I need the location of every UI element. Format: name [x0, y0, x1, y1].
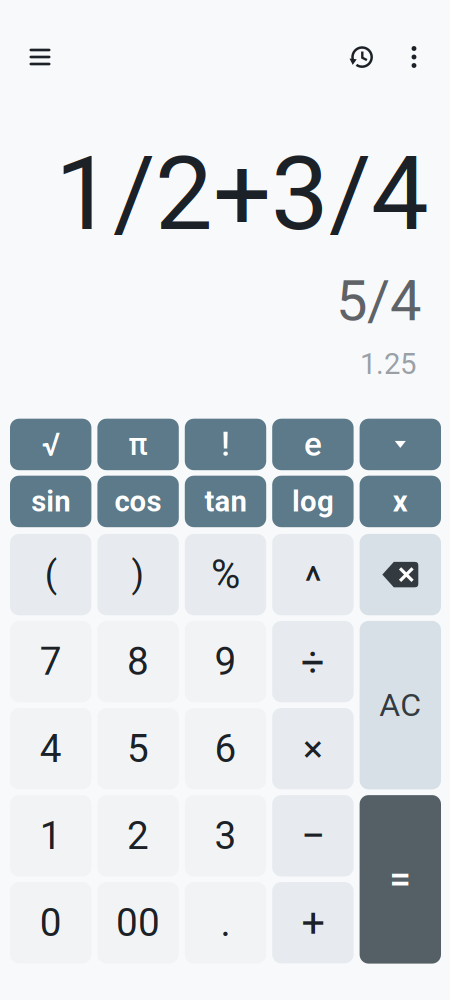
staticText: √ [42, 426, 60, 463]
staticText: ) [132, 553, 145, 596]
staticText: 6 [214, 726, 236, 771]
button[interactable]: 9 [185, 621, 266, 702]
button[interactable]: 7 [10, 621, 91, 702]
button[interactable]: Menu [16, 33, 64, 81]
staticText: 7 [40, 639, 62, 684]
button[interactable]: AC [360, 621, 441, 789]
staticText: sin [31, 484, 70, 519]
button[interactable]: π [97, 419, 179, 470]
button[interactable]: 1 [10, 795, 91, 876]
button[interactable]: 5 [97, 708, 179, 789]
staticText: . [220, 900, 230, 945]
staticText: 2 [127, 813, 149, 858]
button[interactable]: ^ [272, 534, 354, 615]
button[interactable]: + [272, 882, 354, 963]
button[interactable]: tan [185, 476, 266, 527]
staticText: 1/2+3/4 [55, 134, 429, 254]
staticText: 1 [40, 813, 62, 858]
button[interactable]: % [185, 534, 266, 615]
button[interactable]: cos [97, 476, 179, 527]
staticText: 3 [214, 813, 236, 858]
staticText: tan [204, 484, 246, 519]
staticText: AC [379, 686, 421, 724]
staticText: 9 [214, 639, 236, 684]
button[interactable]: 00 [97, 882, 179, 963]
staticText: 5/4 [336, 268, 421, 334]
button[interactable]: ( [10, 534, 91, 615]
button[interactable]: More options [394, 33, 434, 81]
staticText: − [301, 811, 325, 861]
button[interactable]: More functions [360, 419, 441, 470]
button[interactable]: 4 [10, 708, 91, 789]
button[interactable]: − [272, 795, 354, 876]
button[interactable]: = [360, 795, 441, 964]
staticText: 0 [40, 900, 62, 945]
button[interactable]: ÷ [272, 621, 354, 702]
staticText: × [303, 727, 323, 770]
staticText: % [211, 551, 240, 598]
staticText: ^ [304, 557, 321, 606]
button[interactable]: . [185, 882, 266, 963]
staticText: 1.25 [360, 347, 416, 381]
button[interactable]: 8 [97, 621, 179, 702]
staticText: ! [221, 425, 230, 464]
button[interactable]: log [272, 476, 354, 527]
button[interactable]: sin [10, 476, 91, 527]
staticText: log [292, 484, 334, 519]
button[interactable]: x [360, 476, 441, 527]
button[interactable]: √ [10, 419, 91, 470]
button[interactable]: e [272, 419, 354, 470]
button[interactable]: × [272, 708, 354, 789]
staticText: e [304, 425, 322, 464]
button[interactable]: ) [97, 534, 179, 615]
staticText: ( [45, 553, 57, 596]
button[interactable]: ! [185, 419, 266, 470]
button[interactable]: 3 [185, 795, 266, 876]
staticText: x [393, 484, 408, 519]
button[interactable]: 2 [97, 795, 179, 876]
staticText: cos [115, 484, 162, 519]
button[interactable]: 0 [10, 882, 91, 963]
staticText: + [301, 898, 324, 947]
button[interactable]: 6 [185, 708, 266, 789]
staticText: 00 [116, 900, 160, 945]
button[interactable]: History [338, 33, 386, 81]
staticText: ÷ [301, 637, 325, 686]
staticText: = [389, 857, 411, 902]
staticText: 8 [127, 639, 149, 684]
button[interactable]: Backspace [360, 534, 441, 615]
staticText: 5 [127, 726, 149, 771]
staticText: 4 [40, 726, 62, 771]
staticText: π [129, 426, 148, 462]
